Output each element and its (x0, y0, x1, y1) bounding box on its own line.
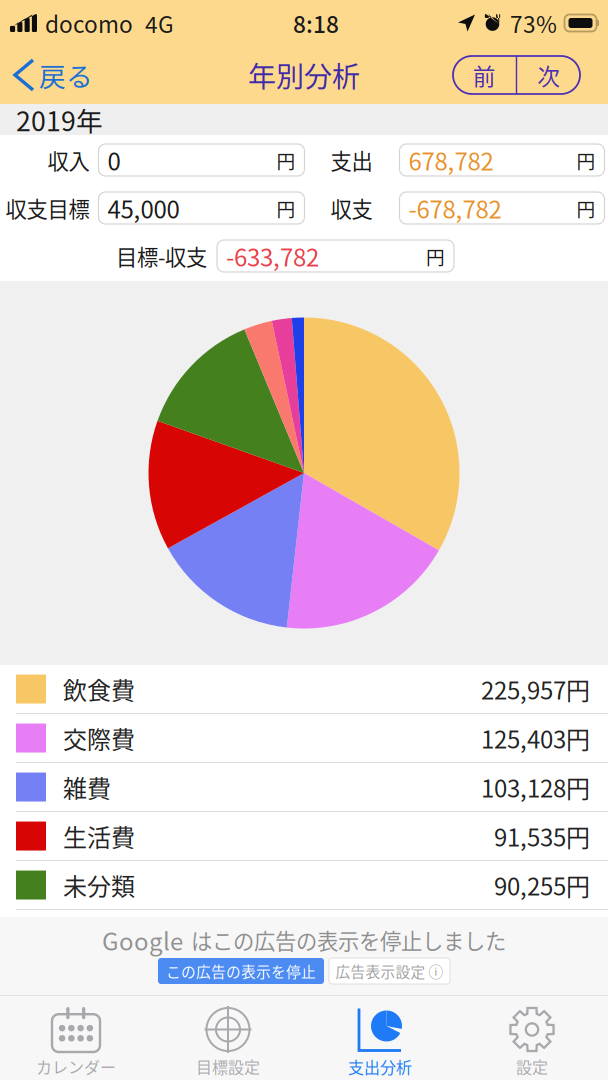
button[interactable]: 前 (453, 56, 516, 94)
staticText: 年別分析 (248, 55, 360, 95)
staticText: docomo (45, 7, 133, 39)
button[interactable]: -678,782 (399, 192, 604, 224)
staticText: 支出 (330, 145, 372, 175)
button[interactable]: 0 (98, 144, 304, 176)
staticText: 円 (426, 242, 445, 269)
staticText: 設定 (516, 1055, 548, 1078)
staticText: 678,782 (408, 143, 493, 177)
staticText: カレンダー (36, 1055, 116, 1078)
staticText: 103,128円 (481, 770, 590, 804)
button[interactable]: カレンダー (0, 996, 152, 1080)
staticText: 125,403円 (481, 721, 590, 755)
button[interactable]: 目標設定 (152, 996, 304, 1080)
staticText: 収支 (330, 193, 372, 223)
staticText: 次 (537, 59, 560, 91)
button[interactable]: 未分類 (0, 861, 608, 910)
staticText: はこの広告の表示を停止しました (191, 925, 506, 955)
staticText: Google (102, 923, 183, 957)
staticText: 収支目標 (5, 193, 89, 223)
staticText: 4G (145, 7, 174, 39)
button[interactable]: -633,782 (217, 240, 454, 272)
staticText: 生活費 (63, 819, 135, 853)
staticText: 前 (473, 59, 496, 91)
button[interactable]: 飲食費 (0, 665, 608, 714)
staticText: 未分類 (63, 868, 135, 902)
button[interactable]: 交際費 (0, 714, 608, 763)
staticText: 支出分析 (348, 1055, 412, 1078)
button[interactable]: この広告の表示を停止 (158, 958, 324, 984)
staticText: 円 (576, 146, 595, 173)
staticText: 目標-収支 (116, 241, 207, 271)
staticText: 73% (510, 7, 557, 39)
staticText: 91,535円 (494, 819, 590, 853)
button[interactable]: 広告表示設定 ⓘ (329, 958, 450, 984)
staticText: 円 (276, 146, 295, 173)
staticText: 交際費 (63, 721, 135, 755)
staticText: 45,000 (107, 191, 179, 225)
staticText: 雑費 (63, 770, 111, 804)
staticText: 収入 (47, 145, 89, 175)
staticText: -633,782 (226, 239, 319, 273)
button[interactable]: 設定 (456, 996, 608, 1080)
staticText: 8:18 (293, 7, 339, 39)
staticText: 目標設定 (196, 1055, 260, 1078)
button[interactable]: 次 (517, 56, 580, 94)
staticText: -678,782 (408, 191, 501, 225)
button[interactable]: 戻る (15, 52, 93, 98)
staticText: 0 (107, 143, 120, 177)
staticText: この広告の表示を停止 (166, 960, 316, 982)
staticText: 円 (576, 194, 595, 221)
staticText: 2019年 (16, 100, 103, 139)
button[interactable]: 678,782 (399, 144, 604, 176)
staticText: 225,957円 (481, 672, 590, 706)
staticText: 円 (276, 194, 295, 221)
button[interactable]: 45,000 (98, 192, 304, 224)
button[interactable]: 支出分析 (304, 996, 456, 1080)
button[interactable]: 雑費 (0, 763, 608, 812)
button[interactable]: 生活費 (0, 812, 608, 861)
staticText: 90,255円 (494, 868, 590, 902)
staticText: 戻る (39, 56, 93, 94)
staticText: 飲食費 (63, 672, 135, 706)
staticText: 広告表示設定 ⓘ (335, 960, 443, 982)
